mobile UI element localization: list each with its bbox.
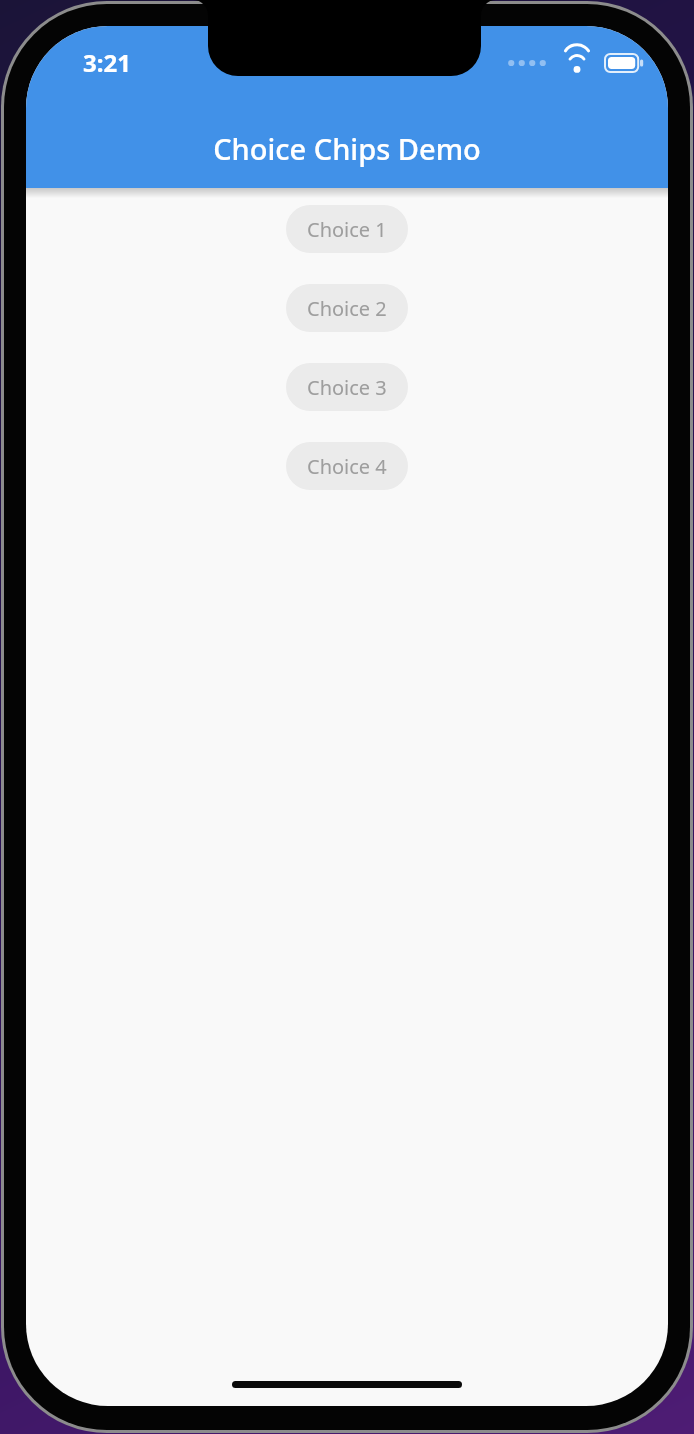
staticText: 3:21 [83,46,131,79]
staticText: Choice Chips Demo [213,129,481,168]
button[interactable]: Choice 2 [286,284,408,332]
button[interactable]: Choice 3 [286,363,408,411]
staticText: Choice 1 [307,216,387,243]
staticText: Choice 4 [307,453,387,480]
button[interactable]: Choice 4 [286,442,408,490]
staticText: Choice 3 [307,374,387,401]
staticText: Choice 2 [307,295,387,322]
button[interactable]: Choice 1 [286,205,408,253]
